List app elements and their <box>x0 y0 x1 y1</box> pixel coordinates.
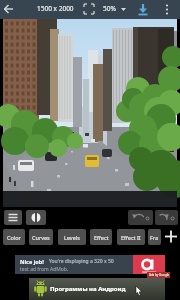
button[interactable]: Levels <box>58 229 86 245</box>
staticText: Программы на Андроид <box>50 285 126 293</box>
staticText: 1500 x 2000 <box>37 4 74 13</box>
button[interactable]: Fra <box>148 229 161 245</box>
button[interactable] <box>26 210 46 225</box>
staticText: Ads by Google <box>149 273 170 277</box>
button[interactable] <box>128 210 153 225</box>
button[interactable]: Effect II <box>117 229 145 245</box>
button[interactable]: Effect <box>90 229 112 245</box>
button[interactable] <box>162 228 180 245</box>
button[interactable] <box>2 2 16 16</box>
staticText: You're displaying a 320 x 50 <box>49 258 114 265</box>
button[interactable] <box>161 1 173 18</box>
button[interactable] <box>155 210 178 225</box>
staticText: Levels <box>64 234 80 241</box>
button[interactable]: 50% <box>100 1 130 18</box>
staticText: Effect II <box>121 234 141 241</box>
staticText: test ad from AdMob. <box>20 266 69 273</box>
staticText: Nice job! <box>20 258 44 265</box>
button[interactable]: Nice job! <box>15 255 165 274</box>
staticText: Color <box>7 234 21 241</box>
button[interactable]: Программы на Андроид <box>29 278 165 300</box>
staticText: Effect <box>94 234 109 241</box>
button[interactable] <box>4 210 22 225</box>
staticText: Fra <box>150 234 159 241</box>
button[interactable] <box>135 2 151 17</box>
staticText: 50% <box>103 4 116 13</box>
button[interactable]: Color <box>3 229 25 245</box>
staticText: Curves <box>32 234 50 241</box>
button[interactable]: Curves <box>29 229 53 245</box>
